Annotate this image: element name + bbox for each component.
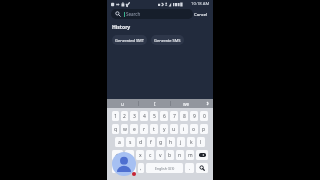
- staticText: ?123: [114, 166, 122, 171]
- button[interactable]: u: [107, 99, 138, 108]
- staticText: 10:18 AM: [191, 1, 210, 7]
- button[interactable]: e: [130, 124, 138, 134]
- staticText: j: [180, 139, 182, 146]
- button[interactable]: k: [187, 137, 195, 147]
- button[interactable]: Shift: [112, 150, 123, 160]
- button[interactable]: g: [157, 137, 165, 147]
- staticText: p: [202, 126, 206, 133]
- button[interactable]: 2: [121, 111, 128, 121]
- button[interactable]: d: [137, 137, 145, 147]
- button[interactable]: v: [156, 150, 164, 160]
- staticText: Generated SMT: [115, 38, 144, 43]
- button[interactable]: Generated SMT: [112, 35, 147, 45]
- staticText: a: [118, 139, 121, 146]
- staticText: y: [163, 126, 166, 133]
- button[interactable]: q: [112, 124, 119, 134]
- staticText: l: [200, 139, 202, 146]
- button[interactable]: m: [186, 150, 194, 160]
- staticText: History: [112, 24, 131, 31]
- staticText: x: [139, 152, 142, 159]
- button[interactable]: ,: [138, 163, 144, 173]
- button[interactable]: z: [125, 150, 134, 160]
- button[interactable]: w: [121, 124, 128, 134]
- staticText: k: [190, 139, 193, 146]
- button[interactable]: c: [146, 150, 154, 160]
- button[interactable]: s: [126, 137, 135, 147]
- button[interactable]: j: [177, 137, 185, 147]
- staticText: English (US): [155, 166, 175, 171]
- button[interactable]: Backspace: [196, 150, 208, 160]
- button[interactable]: x: [136, 150, 144, 160]
- staticText: g: [159, 139, 163, 146]
- staticText: 9: [193, 113, 196, 120]
- button[interactable]: 1: [112, 111, 119, 121]
- staticText: u: [121, 101, 124, 107]
- button[interactable]: u: [170, 124, 178, 134]
- staticText: f: [150, 139, 152, 146]
- staticText: b: [168, 152, 172, 159]
- button[interactable]: p: [200, 124, 208, 134]
- staticText: 2: [123, 113, 126, 120]
- button[interactable]: Search: [196, 163, 208, 173]
- button[interactable]: 5: [150, 111, 158, 121]
- button[interactable]: Symbols: [112, 163, 123, 173]
- button[interactable]: Emoji: [125, 163, 136, 173]
- button[interactable]: English (US): [146, 163, 183, 173]
- button[interactable]: t: [150, 124, 158, 134]
- staticText: e: [133, 126, 136, 133]
- button[interactable]: f: [147, 137, 155, 147]
- staticText: n: [178, 152, 182, 159]
- staticText: .: [189, 165, 191, 172]
- staticText: 0: [203, 113, 206, 120]
- button[interactable]: Generate SMS: [151, 35, 184, 45]
- staticText: r: [143, 126, 146, 133]
- button[interactable]: n: [176, 150, 184, 160]
- button[interactable]: .: [185, 163, 194, 173]
- button[interactable]: o: [190, 124, 198, 134]
- button[interactable]: l: [197, 137, 205, 147]
- staticText: c: [149, 152, 152, 159]
- staticText: z: [128, 152, 131, 159]
- button[interactable]: Search: [111, 9, 193, 19]
- staticText: d: [139, 139, 143, 146]
- staticText: Generate SMS: [154, 38, 181, 43]
- button[interactable]: b: [166, 150, 174, 160]
- button[interactable]: 0: [200, 111, 208, 121]
- button[interactable]: I: [139, 99, 170, 108]
- button[interactable]: More suggestions: [202, 99, 213, 108]
- button[interactable]: 8: [180, 111, 188, 121]
- staticText: 6: [163, 113, 166, 120]
- staticText: u: [172, 126, 176, 133]
- button[interactable]: h: [167, 137, 175, 147]
- staticText: q: [114, 126, 118, 133]
- button[interactable]: 4: [140, 111, 148, 121]
- staticText: I: [154, 101, 156, 107]
- staticText: we: [183, 101, 190, 107]
- button[interactable]: r: [140, 124, 148, 134]
- staticText: Cancel: [194, 11, 208, 17]
- staticText: h: [169, 139, 173, 146]
- button[interactable]: 9: [190, 111, 198, 121]
- button[interactable]: we: [171, 99, 202, 108]
- button[interactable]: a: [115, 137, 124, 147]
- staticText: 7: [173, 113, 176, 120]
- staticText: 5: [153, 113, 156, 120]
- button[interactable]: 3: [130, 111, 138, 121]
- button[interactable]: 6: [160, 111, 168, 121]
- staticText: i: [183, 126, 185, 133]
- button[interactable]: i: [180, 124, 188, 134]
- staticText: 1: [114, 113, 117, 120]
- button[interactable]: Profile: [112, 152, 136, 176]
- staticText: Search: [126, 11, 141, 17]
- staticText: t: [153, 126, 155, 133]
- staticText: 8: [183, 113, 186, 120]
- staticText: o: [192, 126, 196, 133]
- staticText: s: [129, 139, 132, 146]
- button[interactable]: 7: [170, 111, 178, 121]
- staticText: 4: [143, 113, 146, 120]
- staticText: v: [159, 152, 162, 159]
- staticText: ,: [140, 165, 142, 172]
- button[interactable]: y: [160, 124, 168, 134]
- staticText: m: [188, 152, 193, 159]
- button[interactable]: Cancel: [194, 11, 208, 17]
